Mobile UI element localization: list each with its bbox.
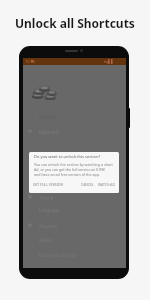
button[interactable]: GET FULL VERSION [33, 182, 64, 187]
button[interactable]: WATCH AD [98, 182, 115, 187]
staticText: Unlock all Shortcuts [15, 15, 135, 31]
staticText: Theme [39, 195, 54, 201]
button[interactable]: CANCEL [81, 182, 94, 187]
staticText: Language [39, 207, 60, 213]
staticText: You can unlock the section by watching a… [34, 162, 113, 177]
staticText: Do you want to unlock this section? [34, 154, 101, 159]
staticText: Advanced settings [38, 252, 76, 258]
staticText: About [39, 237, 52, 243]
staticText: 10:56 [25, 59, 36, 64]
button[interactable]: Theme [23, 191, 126, 205]
staticText: Keyboard [39, 129, 59, 135]
staticText: ▾▴▌▌ [104, 59, 115, 64]
staticText: Accuracy [39, 223, 58, 229]
